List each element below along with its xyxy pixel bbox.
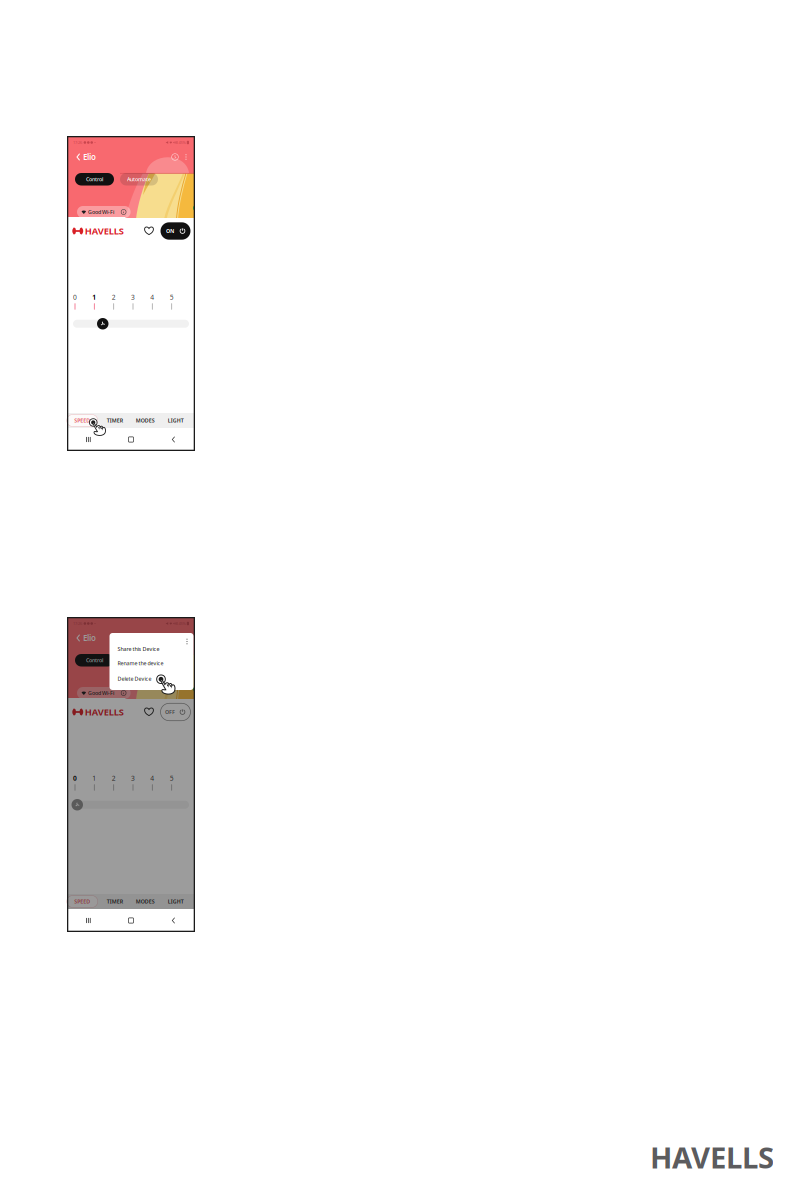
staticText: 5 — [170, 774, 174, 783]
staticText: MODES — [136, 898, 155, 905]
staticText: Rename the device — [117, 660, 163, 667]
button[interactable]: Turn on — [160, 703, 190, 721]
staticText: 45% — [179, 621, 186, 626]
staticText: TIMER — [107, 898, 123, 905]
staticText: 17:26 — [73, 621, 82, 626]
staticText: TIMER — [107, 417, 123, 424]
button[interactable]: Home — [110, 912, 152, 929]
staticText: LIGHT — [168, 417, 184, 424]
staticText: Automate — [127, 657, 151, 664]
button[interactable]: More options — [181, 631, 191, 644]
button[interactable]: Control — [75, 654, 114, 666]
staticText: 0 — [73, 293, 77, 302]
button[interactable]: TIMER — [100, 413, 130, 428]
button[interactable]: Home — [110, 431, 152, 448]
staticText: 5 — [170, 293, 174, 302]
button[interactable]: Back — [74, 150, 83, 163]
button[interactable]: Share this Device — [117, 645, 185, 653]
staticText: Good Wi-Fi — [88, 208, 114, 216]
staticText: Good Wi-Fi — [88, 689, 114, 697]
staticText: ON — [166, 227, 174, 235]
button[interactable]: Rename the device — [117, 659, 185, 667]
button[interactable]: Delete Device — [117, 675, 185, 683]
staticText: 0 — [73, 774, 77, 783]
button[interactable]: Back — [74, 631, 83, 644]
staticText: Elio — [83, 633, 96, 643]
staticText: 2 — [112, 293, 116, 302]
staticText: Delete Device — [117, 675, 151, 682]
button[interactable]: Automate — [120, 173, 158, 185]
button[interactable]: History — [169, 150, 181, 163]
staticText: 3 — [131, 774, 135, 783]
staticText: 4 — [150, 293, 154, 302]
button[interactable]: Favourite — [142, 222, 155, 239]
staticText: Share this Device — [117, 645, 159, 653]
staticText: HAVELLS — [85, 225, 124, 237]
button[interactable]: More options — [181, 150, 191, 163]
staticText: 2 — [112, 774, 116, 783]
button[interactable]: Recent apps — [67, 912, 110, 929]
button[interactable]: SPEED — [65, 413, 100, 428]
staticText: Elio — [83, 152, 96, 162]
staticText: 45% — [179, 140, 186, 145]
button[interactable]: History — [169, 631, 181, 644]
staticText: Control — [86, 176, 103, 183]
staticText: 3 — [131, 293, 135, 302]
button[interactable]: MODES — [130, 413, 161, 428]
staticText: LIGHT — [168, 898, 184, 905]
button[interactable]: MODES — [130, 894, 161, 909]
staticText: Automate — [127, 176, 151, 183]
button[interactable]: Turn off — [160, 222, 190, 240]
staticText: 4 — [150, 774, 154, 783]
button[interactable]: LIGHT — [161, 894, 191, 909]
staticText: Control — [86, 657, 103, 664]
button[interactable]: Favourite — [142, 703, 155, 720]
staticText: OFF — [165, 708, 175, 716]
button[interactable]: SPEED — [65, 894, 100, 909]
button[interactable]: Back — [152, 431, 195, 448]
button[interactable]: LIGHT — [161, 413, 191, 428]
staticText: HAVELLS — [650, 1137, 774, 1176]
staticText: SPEED — [74, 417, 90, 424]
staticText: 1 — [92, 774, 96, 783]
staticText: MODES — [136, 417, 155, 424]
button[interactable]: Control — [75, 173, 114, 185]
staticText: SPEED — [74, 898, 90, 905]
staticText: 1 — [92, 293, 96, 302]
button[interactable]: TIMER — [100, 894, 130, 909]
button[interactable]: Back — [152, 912, 195, 929]
button[interactable]: Recent apps — [67, 431, 110, 448]
staticText: 17:26 — [73, 140, 82, 145]
staticText: HAVELLS — [85, 706, 124, 718]
button[interactable]: Automate — [120, 654, 158, 666]
